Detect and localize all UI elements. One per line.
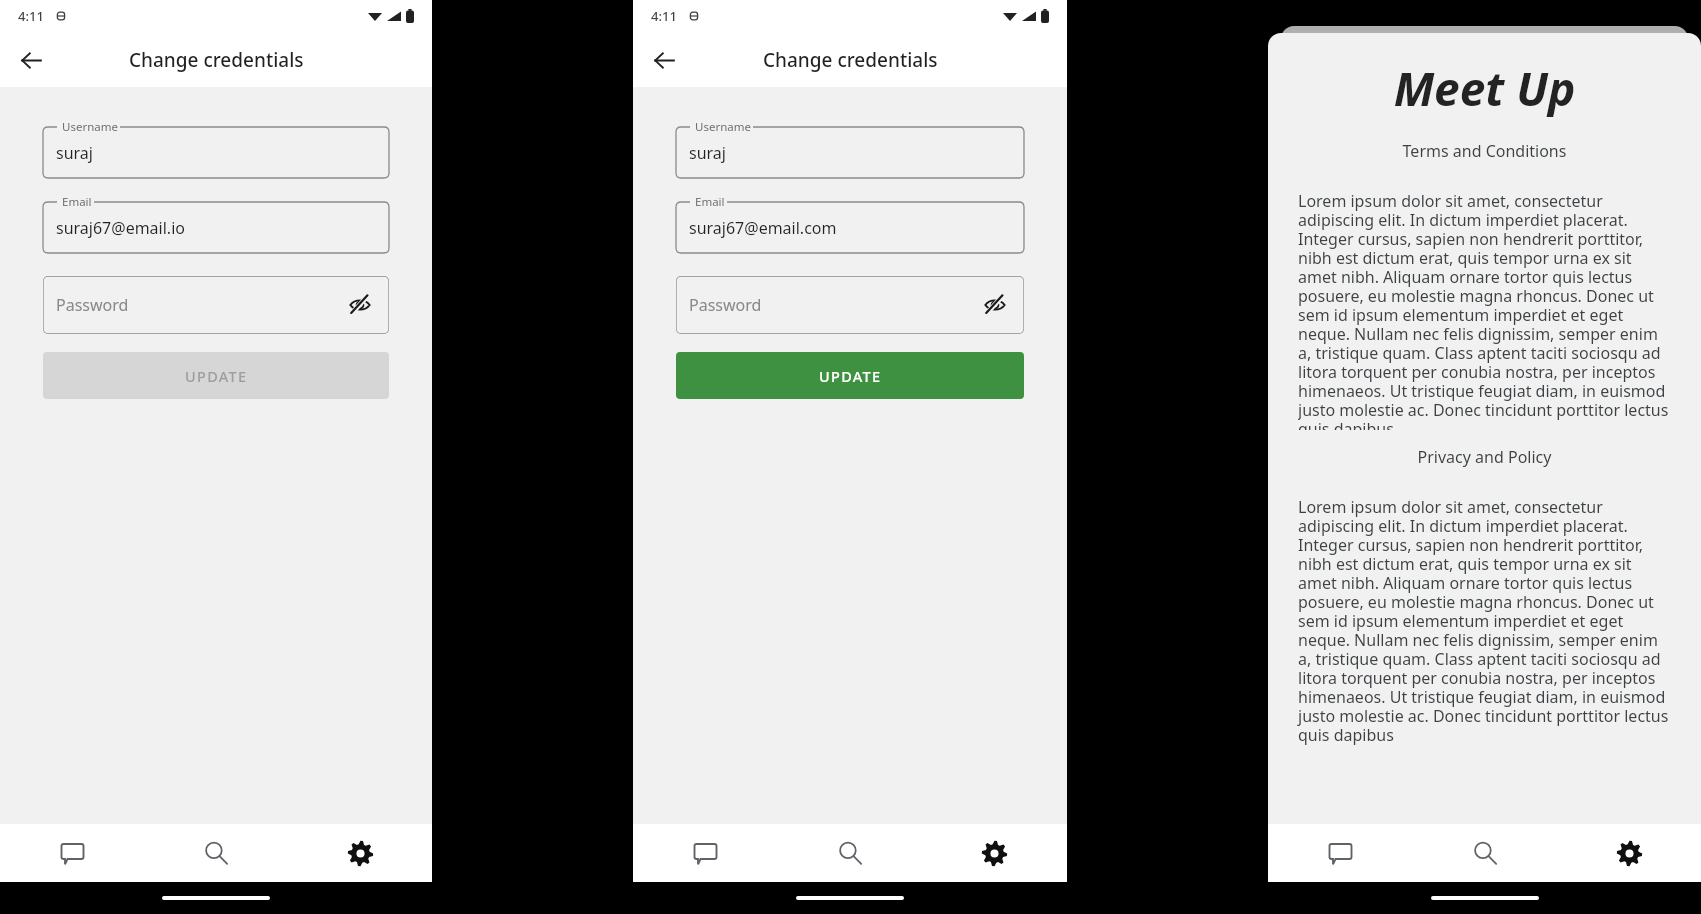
button[interactable]: Show password	[978, 288, 1012, 322]
button[interactable]: Chat	[0, 824, 144, 882]
staticText: suraj	[689, 142, 726, 164]
staticText: Username	[695, 119, 751, 135]
staticText: Terms and Conditions	[1268, 140, 1701, 162]
staticText: Email	[62, 194, 92, 210]
button[interactable]: Search	[144, 824, 288, 882]
button[interactable]: Chat	[633, 824, 777, 882]
staticText: Privacy and Policy	[1268, 446, 1701, 468]
button[interactable]: Settings	[1557, 824, 1701, 882]
button[interactable]: Password	[43, 276, 389, 334]
staticText: Change credentials	[763, 47, 938, 73]
staticText: Username	[62, 119, 118, 135]
staticText: UPDATE	[819, 366, 882, 386]
staticText: Change credentials	[129, 47, 304, 73]
staticText: Password	[56, 294, 129, 316]
button[interactable]: Back	[10, 39, 52, 81]
button[interactable]: UPDATE	[676, 352, 1024, 399]
staticText: Lorem ipsum dolor sit amet, consectetur …	[1298, 496, 1671, 746]
staticText: suraj67@email.com	[689, 217, 837, 239]
button[interactable]: Password	[676, 276, 1024, 334]
staticText: Password	[689, 294, 762, 316]
staticText: 4:11	[651, 7, 677, 25]
staticText: suraj67@email.io	[56, 217, 185, 239]
staticText: UPDATE	[185, 366, 248, 386]
staticText: Lorem ipsum dolor sit amet, consectetur …	[1298, 190, 1671, 430]
button[interactable]: Back	[643, 39, 685, 81]
staticText: Email	[695, 194, 725, 210]
button[interactable]: Settings	[922, 824, 1067, 882]
button[interactable]: Show password	[343, 288, 377, 322]
button[interactable]: Search	[777, 824, 922, 882]
button[interactable]: UPDATE	[43, 352, 389, 399]
staticText: Meet Up	[1268, 57, 1701, 120]
button[interactable]: Search	[1413, 824, 1557, 882]
button[interactable]: Settings	[288, 824, 432, 882]
button[interactable]: Chat	[1268, 824, 1413, 882]
staticText: 4:11	[18, 7, 44, 25]
staticText: suraj	[56, 142, 93, 164]
